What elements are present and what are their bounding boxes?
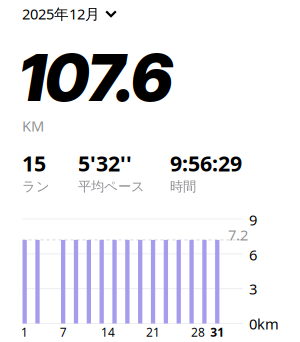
staticText: 107.6 [19,39,172,116]
staticText: 0km [249,314,279,333]
staticText: KM [22,116,44,135]
staticText: ラン [22,178,50,195]
staticText: 5'32'' [78,149,132,177]
staticText: 時間 [170,178,196,195]
staticText: 28 [191,324,205,340]
staticText: 31 [210,324,224,340]
button[interactable]: 2025年12月 [22,4,117,23]
staticText: 15 [22,149,46,177]
staticText: 1 [21,324,28,340]
staticText: 7.2 [228,225,248,244]
staticText: 9 [249,210,257,229]
staticText: 7 [60,324,67,340]
staticText: 平均ペース [78,178,145,195]
staticText: 14 [101,324,115,340]
staticText: 3 [249,279,257,298]
staticText: 9:56:29 [170,149,242,177]
staticText: 6 [249,245,257,264]
staticText: 21 [146,324,160,340]
staticText: 2025年12月 [22,4,100,23]
